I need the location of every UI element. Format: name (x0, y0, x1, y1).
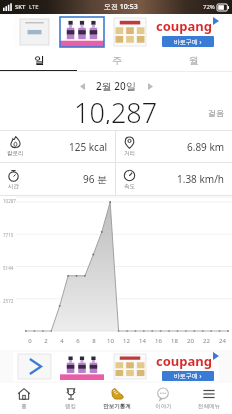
button[interactable]: 체중계 상품 (13, 17, 56, 47)
staticText: 속도 (124, 183, 135, 190)
staticText: 10 (107, 337, 114, 345)
staticText: 전체메뉴 (198, 403, 220, 410)
button[interactable]: 전체메뉴 (186, 383, 232, 414)
staticText: 6 (76, 337, 80, 345)
button[interactable]: 속도 (116, 163, 232, 195)
staticText: 칼로리 (7, 150, 24, 157)
staticText: coupang (156, 352, 212, 370)
staticText: 오전 10:53 (104, 2, 138, 12)
staticText: 홈 (21, 403, 27, 410)
staticText: 10287 (3, 198, 16, 204)
staticText: 월 (189, 54, 199, 67)
staticText: 6.89 km (187, 140, 225, 154)
staticText: 8 (92, 337, 96, 345)
button[interactable]: 이전 날짜 (74, 78, 90, 94)
button[interactable]: 칼로리 (0, 131, 115, 162)
button[interactable]: 이야기 (140, 383, 186, 414)
staticText: 2572 (3, 298, 14, 304)
staticText: coupang (156, 17, 212, 35)
staticText: 바로구매 › (174, 38, 202, 46)
button[interactable]: 랭킹 (47, 383, 94, 414)
staticText: 14 (139, 337, 146, 345)
staticText: 12 (123, 337, 130, 345)
staticText: SKT (15, 3, 26, 11)
button[interactable]: 쿠팡 바로구매 (156, 352, 219, 381)
staticText: 125 kcal (69, 140, 108, 154)
staticText: 시간 (8, 183, 19, 190)
button[interactable]: 주 (78, 50, 155, 70)
button[interactable]: 거리 (116, 131, 232, 162)
staticText: 0 (28, 337, 32, 345)
staticText: 22 (203, 337, 210, 345)
staticText: 랭킹 (65, 403, 76, 410)
staticText: 7715 (3, 232, 14, 238)
staticText: 2 (44, 337, 48, 345)
staticText: 1.38 km/h (177, 172, 225, 186)
button[interactable]: 만보기통계 (94, 383, 140, 414)
button[interactable]: 일 (0, 50, 78, 70)
button[interactable]: 월 (155, 50, 232, 70)
staticText: 5144 (3, 265, 14, 271)
staticText: 96 분 (83, 172, 108, 186)
staticText: 2월 20일 (96, 79, 136, 93)
staticText: 이야기 (155, 403, 172, 410)
button[interactable]: 쿠팡 바로구매 (156, 16, 219, 48)
button[interactable]: 시간 (0, 163, 115, 195)
button[interactable]: 쿠팡 하단 광고 (13, 352, 219, 381)
staticText: LTE (29, 3, 39, 11)
button[interactable]: 다음 상품 (13, 352, 56, 381)
staticText: 20 (187, 337, 194, 345)
button[interactable]: 음료 상품 (60, 17, 104, 47)
button[interactable]: Coupang 광고 (13, 16, 219, 48)
staticText: 16 (155, 337, 162, 345)
staticText: 만보기통계 (103, 403, 131, 410)
button[interactable]: 세트 상품 (108, 17, 152, 47)
button[interactable]: 음료 상품 (60, 353, 104, 380)
staticText: 거리 (124, 150, 135, 157)
staticText: 4 (60, 337, 64, 345)
staticText: 18 (171, 337, 178, 345)
staticText: 일 (34, 54, 44, 67)
staticText: 72% (203, 3, 215, 11)
button[interactable]: 홈 (0, 383, 47, 414)
staticText: 주 (112, 54, 122, 67)
button[interactable]: 세트 상품 (108, 353, 152, 380)
staticText: 바로구매 › (174, 372, 202, 380)
button[interactable]: 다음 날짜 (142, 78, 158, 94)
staticText: 24 (219, 337, 226, 345)
staticText: 10,287 (74, 94, 158, 124)
staticText: 걸음 (208, 108, 224, 118)
